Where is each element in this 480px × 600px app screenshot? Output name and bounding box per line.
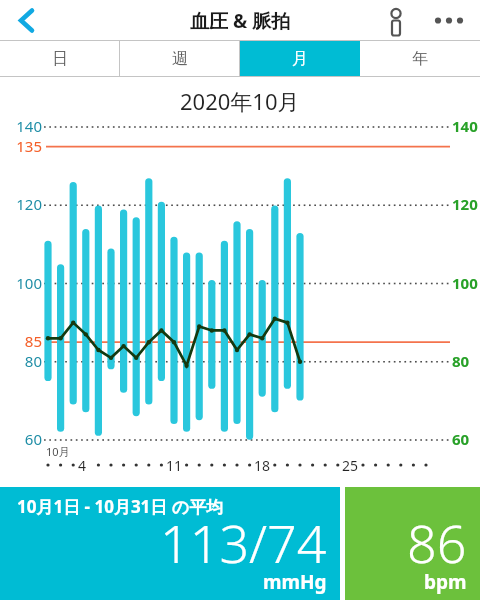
staticText: 85 — [6, 331, 42, 351]
staticText: 140 — [452, 116, 478, 136]
button[interactable]: 86 — [345, 487, 480, 600]
button[interactable]: 年 — [360, 41, 480, 76]
staticText: bpm — [424, 569, 467, 595]
staticText: 4 — [78, 456, 87, 475]
staticText: 140 — [6, 116, 42, 136]
staticText: 60 — [6, 429, 42, 449]
button[interactable]: Back — [4, 0, 46, 41]
staticText: 80 — [452, 351, 470, 371]
staticText: 120 — [452, 194, 478, 214]
staticText: 週 — [172, 49, 188, 69]
staticText: 60 — [452, 429, 470, 449]
staticText: 11 — [166, 456, 183, 475]
staticText: 113/74 — [160, 507, 327, 578]
button[interactable]: 日 — [0, 41, 120, 76]
button[interactable]: 週 — [120, 41, 240, 76]
staticText: 100 — [6, 273, 42, 293]
staticText: mmHg — [263, 569, 327, 595]
staticText: 2020年10月 — [180, 86, 300, 116]
staticText: 年 — [412, 49, 428, 69]
button[interactable]: More options — [426, 0, 472, 41]
button[interactable]: 10月1日 - 10月31日 の平均 — [0, 487, 340, 600]
staticText: 血圧 & 脈拍 — [190, 8, 291, 34]
staticText: 18 — [254, 456, 271, 475]
staticText: 86 — [407, 507, 467, 578]
staticText: 10月 — [46, 444, 70, 459]
staticText: 10月1日 - 10月31日 の平均 — [17, 495, 224, 518]
button[interactable]: Profile — [378, 3, 414, 39]
staticText: 120 — [6, 194, 42, 214]
staticText: 月 — [292, 49, 308, 69]
staticText: 80 — [6, 351, 42, 371]
staticText: 100 — [452, 273, 478, 293]
staticText: 25 — [342, 456, 359, 475]
staticText: 日 — [52, 49, 68, 69]
button[interactable]: 月 — [240, 41, 360, 76]
staticText: 135 — [6, 136, 42, 156]
